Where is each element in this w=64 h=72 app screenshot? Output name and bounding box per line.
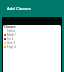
staticText: Sci 2 [7, 37, 14, 41]
staticText: Classes [4, 25, 16, 29]
button[interactable]: Select [3, 29, 61, 33]
button[interactable]: Hist 3 [3, 41, 61, 45]
button[interactable]: Math 1 [3, 33, 61, 37]
staticText: Select [7, 29, 16, 33]
staticText: Math 1 [7, 33, 17, 37]
staticText: Hist 3 [7, 41, 16, 45]
button[interactable]: Engl 4 [3, 45, 61, 49]
staticText: Add Classes [7, 6, 31, 12]
staticText: Engl 4 [7, 45, 16, 49]
button[interactable]: Sci 2 [3, 37, 61, 41]
